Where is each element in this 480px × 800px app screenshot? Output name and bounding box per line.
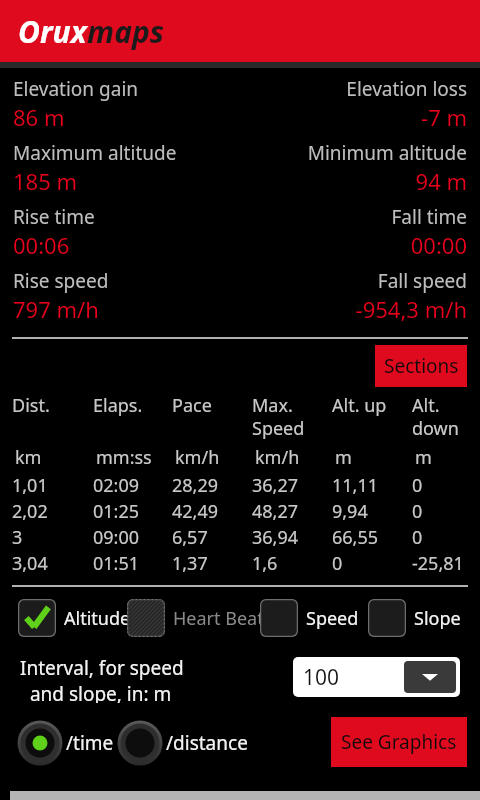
staticText: Fall time (391, 204, 467, 230)
staticText: Speed (306, 606, 359, 631)
button[interactable]: /time (18, 721, 114, 765)
staticText: 09:00 (93, 525, 140, 550)
staticText: 0 (412, 499, 423, 524)
staticText: 0 (412, 473, 423, 498)
staticText: Rise speed (13, 268, 109, 294)
staticText: 3 (12, 525, 23, 550)
staticText: 00:00 (410, 230, 467, 260)
staticText: 86 m (13, 102, 65, 132)
staticText: km (15, 445, 42, 470)
staticText: 1,6 (252, 551, 278, 576)
staticText: /distance (166, 730, 248, 756)
staticText: Rise time (13, 204, 95, 230)
button[interactable]: Speed (260, 599, 359, 637)
staticText: Dist. (12, 393, 50, 418)
staticText: Elevation loss (346, 76, 467, 102)
staticText: -7 m (421, 102, 467, 132)
staticText: Alt. up (332, 393, 387, 418)
staticText: Fall speed (377, 268, 467, 294)
staticText: Maximum altitude (13, 140, 177, 166)
staticText: km/h (255, 445, 300, 470)
staticText: Orux (18, 11, 87, 52)
staticText: 2,02 (12, 499, 48, 524)
staticText: 3,04 (12, 551, 48, 576)
button[interactable]: Heart Beats (127, 599, 273, 637)
staticText: 6,57 (172, 525, 208, 550)
staticText: Heart Beats (173, 606, 273, 631)
staticText: Sections (384, 353, 459, 379)
staticText: 28,29 (172, 473, 219, 498)
staticText: Interval, for speed and slope, in: m (20, 655, 184, 703)
staticText: 1,01 (12, 473, 48, 498)
staticText: m (335, 445, 352, 470)
staticText: See Graphics (341, 729, 457, 755)
staticText: 42,49 (172, 499, 219, 524)
button[interactable]: See Graphics (331, 717, 467, 767)
staticText: 02:09 (93, 473, 140, 498)
staticText: 00:06 (13, 230, 70, 260)
staticText: m (415, 445, 432, 470)
staticText: 01:51 (93, 551, 140, 576)
button[interactable]: Slope (368, 599, 461, 637)
staticText: Max. Speed (252, 393, 305, 440)
button[interactable]: Interval value 100 (293, 657, 460, 697)
staticText: mm:ss (96, 445, 152, 470)
button[interactable]: /distance (118, 721, 248, 765)
staticText: /time (66, 730, 114, 756)
staticText: 100 (303, 663, 340, 692)
staticText: -25,81 (412, 551, 464, 576)
staticText: -954,3 m/h (355, 294, 467, 324)
button[interactable]: Sections (375, 345, 467, 387)
staticText: 11,11 (332, 473, 379, 498)
staticText: 94 m (415, 166, 467, 196)
staticText: maps (87, 11, 165, 52)
staticText: 36,94 (252, 525, 299, 550)
staticText: 48,27 (252, 499, 299, 524)
staticText: Pace (172, 393, 212, 418)
staticText: km/h (175, 445, 220, 470)
staticText: 0 (412, 525, 423, 550)
staticText: 0 (332, 551, 343, 576)
staticText: Elaps. (93, 393, 143, 418)
staticText: 1,37 (172, 551, 208, 576)
staticText: 185 m (13, 166, 78, 196)
staticText: 797 m/h (13, 294, 99, 324)
staticText: Altitude (64, 606, 131, 631)
staticText: Elevation gain (13, 76, 139, 102)
staticText: Minimum altitude (307, 140, 467, 166)
staticText: Slope (414, 606, 461, 631)
staticText: 36,27 (252, 473, 299, 498)
staticText: 9,94 (332, 499, 368, 524)
staticText: 66,55 (332, 525, 379, 550)
staticText: 01:25 (93, 499, 140, 524)
staticText: Alt. down (412, 393, 459, 440)
button[interactable]: Altitude (18, 599, 131, 637)
